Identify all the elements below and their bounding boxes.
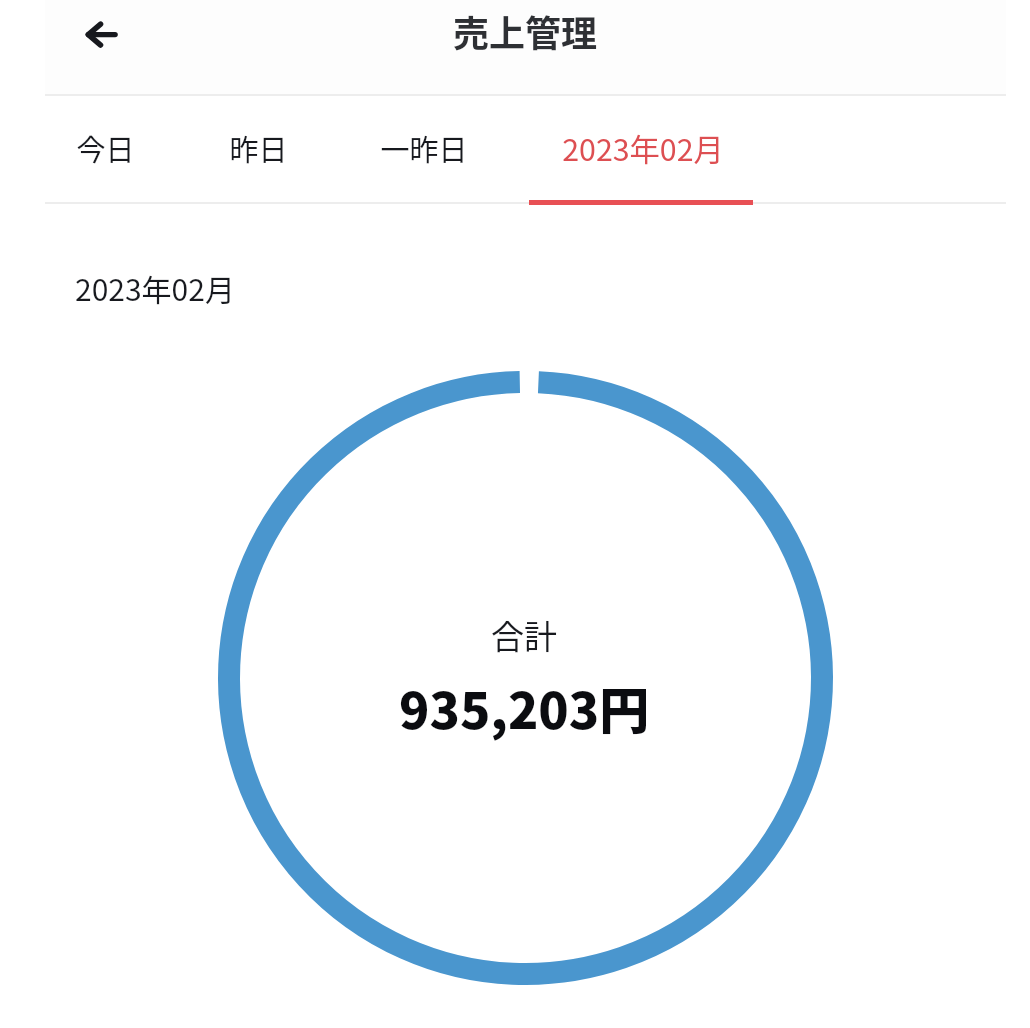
staticText: 今日 — [76, 127, 135, 169]
staticText: 売上管理 — [453, 5, 598, 57]
button[interactable]: 一昨日 — [333, 94, 514, 201]
button[interactable]: Back — [67, 1, 135, 69]
button[interactable]: 2023年02月 — [520, 94, 766, 201]
staticText: 2023年02月 — [562, 126, 724, 170]
staticText: 2023年02月 — [75, 266, 235, 309]
staticText: 昨日 — [229, 127, 288, 169]
staticText: 935,203円 — [399, 671, 650, 743]
staticText: 合計 — [491, 611, 557, 659]
staticText: 一昨日 — [380, 127, 468, 169]
button[interactable]: 昨日 — [185, 94, 332, 201]
button[interactable]: 今日 — [32, 94, 179, 201]
